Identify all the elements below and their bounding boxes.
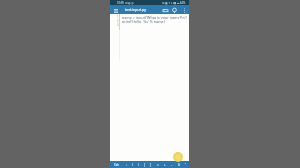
button[interactable]: # xyxy=(175,161,182,168)
staticText: 10:05 ✉ ◐ ◎ xyxy=(117,1,134,5)
button[interactable]: Tab xyxy=(110,161,123,168)
button[interactable]: ( xyxy=(129,161,135,168)
staticText: ] xyxy=(150,163,151,167)
staticText: = xyxy=(157,163,159,167)
staticText: ( xyxy=(132,163,133,167)
staticText: print('Hello, %s' % name) xyxy=(122,19,165,23)
button[interactable]: [ xyxy=(141,161,147,168)
button[interactable]: = xyxy=(154,161,161,168)
button[interactable]: ) xyxy=(135,161,141,168)
staticText: 1 xyxy=(117,15,119,19)
button[interactable]: Save xyxy=(171,7,178,14)
staticText: # xyxy=(178,163,180,167)
button[interactable]: More options xyxy=(181,7,188,14)
button[interactable]: Open file xyxy=(162,7,169,14)
staticText: 2 xyxy=(117,19,119,23)
button[interactable]: " xyxy=(182,161,189,168)
staticText: - xyxy=(171,163,172,167)
button[interactable]: + xyxy=(161,161,168,168)
staticText: 3 xyxy=(117,23,119,27)
staticText: name = input('What is your name?\n') xyxy=(122,15,187,19)
staticText: Tab xyxy=(114,163,119,167)
staticText: : xyxy=(126,163,127,167)
button[interactable]: Menu xyxy=(112,7,119,14)
staticText: [ xyxy=(144,163,145,167)
staticText: ✉ ▣ ↑↓ ▮▮ ▰ 44% xyxy=(162,1,186,5)
button[interactable]: ] xyxy=(147,161,154,168)
button[interactable]: : xyxy=(123,161,129,168)
staticText: testinput.py xyxy=(125,7,147,12)
staticText: " xyxy=(185,163,187,167)
button[interactable]: - xyxy=(168,161,175,168)
staticText: + xyxy=(164,163,166,167)
staticText: ) xyxy=(138,163,139,167)
button[interactable]: Run xyxy=(173,152,183,162)
